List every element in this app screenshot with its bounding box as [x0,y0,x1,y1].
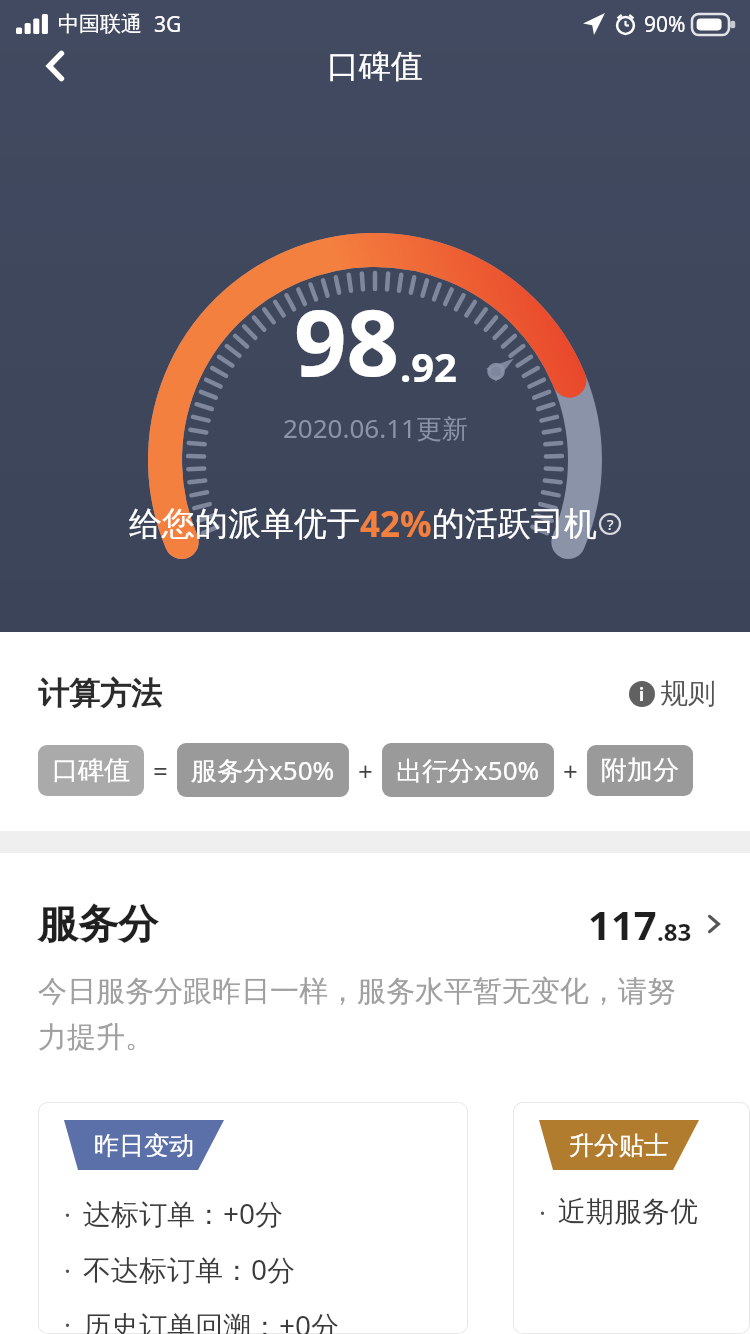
staticText: 昨日变动 [94,1130,194,1161]
button[interactable]: 服务分x50% [177,743,349,797]
staticText: 的活跃司机 [432,503,597,545]
staticText: · [64,1306,71,1334]
staticText: 附加分 [601,754,679,787]
staticText: + [563,753,578,788]
button[interactable]: 昨日变动 [38,1102,468,1334]
staticText: · [64,1196,71,1231]
staticText: i [639,683,645,706]
staticText: 达标订单：+0分 [83,1194,284,1232]
staticText: 历史订单回溯：+0分 [83,1306,340,1334]
staticText: 给您的派单优于 [129,503,360,545]
staticText: = [153,753,168,788]
staticText: · [64,1252,71,1287]
staticText: · [539,1194,546,1229]
button[interactable]: Help [599,513,621,535]
staticText: + [358,753,373,788]
button[interactable]: 附加分 [587,745,693,796]
staticText: 服务分x50% [191,752,335,788]
staticText: 117 [588,897,657,951]
staticText: 计算方法 [38,674,162,713]
button[interactable]: 服务分 [0,853,750,951]
staticText: 不达标订单：0分 [83,1250,296,1288]
staticText: 42% [360,500,432,548]
button[interactable]: Back [24,34,88,98]
staticText: 出行分x50% [396,752,540,788]
staticText: 90% [644,10,686,39]
staticText: 近期服务优秀， [558,1194,740,1229]
button[interactable]: 出行分x50% [382,743,554,797]
staticText: 升分贴士 [569,1130,669,1161]
staticText: 口碑值 [327,46,423,86]
staticText: 3G [154,10,182,39]
staticText: 今日服务分跟昨日一样，服务水平暂无变化，请努力提升。 [38,973,690,1056]
staticText: 规则 [660,676,716,711]
staticText: 中国联通 [58,11,142,37]
button[interactable]: 升分贴士 [513,1102,750,1334]
staticText: .83 [657,915,692,948]
button[interactable]: i [623,670,722,717]
staticText: 服务分 [38,899,158,949]
staticText: .92 [400,339,457,393]
staticText: 98 [294,278,400,403]
staticText: 口碑值 [52,754,130,787]
staticText: ? [607,514,614,534]
staticText: 2020.06.11更新 [283,410,468,446]
button[interactable]: 口碑值 [38,745,144,796]
